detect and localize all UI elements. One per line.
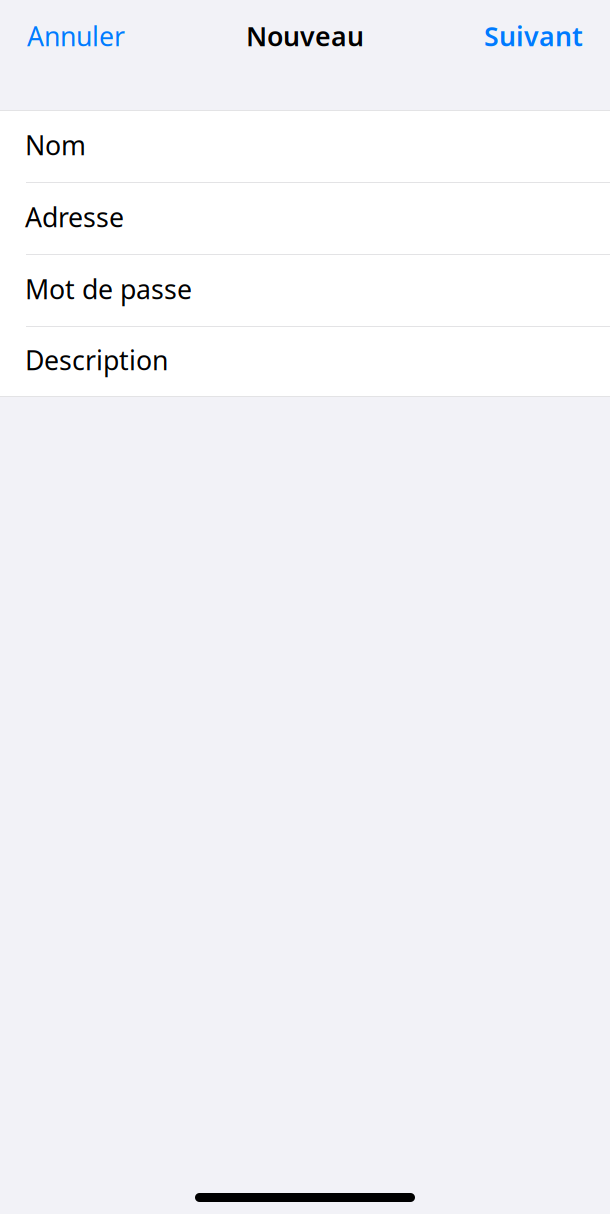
button[interactable]: Annuler — [27, 8, 137, 64]
button[interactable]: Nom — [0, 111, 610, 182]
button[interactable]: Adresse — [0, 183, 610, 254]
button[interactable]: Description — [0, 327, 610, 396]
button[interactable]: Mot de passe — [0, 255, 610, 326]
staticText: Annuler — [27, 18, 125, 54]
button[interactable]: Suivant — [472, 8, 583, 64]
staticText: Suivant — [484, 18, 583, 54]
staticText: Nouveau — [246, 18, 364, 54]
staticText: Nom — [25, 127, 86, 163]
staticText: Description — [25, 342, 168, 378]
staticText: Mot de passe — [25, 271, 192, 307]
staticText: Adresse — [25, 199, 124, 235]
